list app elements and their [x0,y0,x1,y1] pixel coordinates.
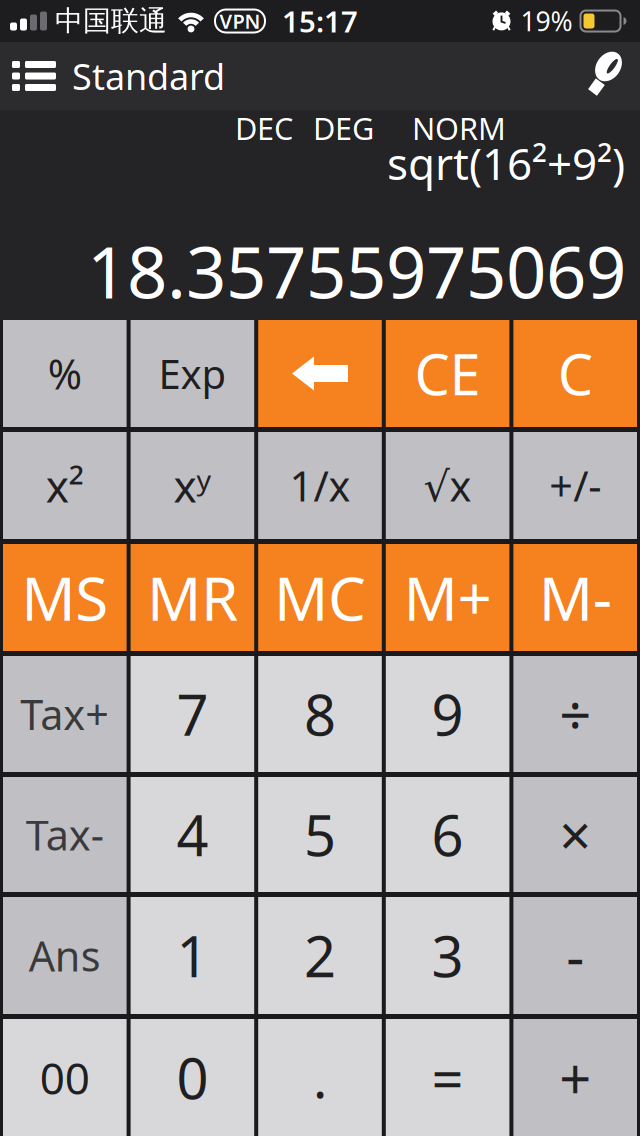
staticText: Tax+ [20,687,109,741]
staticText: 0 [176,1040,208,1115]
button[interactable]: 0 [131,1019,254,1136]
button[interactable]: ÷ [513,656,637,772]
staticText: M+ [404,558,492,637]
button[interactable]: Tax- [3,777,127,892]
staticText: MR [147,558,238,637]
button[interactable]: 8 [258,656,382,772]
button[interactable]: x² [3,432,127,539]
staticText: 2 [304,918,336,993]
staticText: . [313,1042,327,1113]
staticText: 9 [432,677,464,751]
staticText: DEG [313,108,374,148]
staticText: Exp [158,347,226,400]
staticText: +/- [549,458,601,513]
staticText: DEC [235,108,293,148]
staticText: xʸ [173,456,211,515]
button[interactable]: 6 [386,777,509,892]
button[interactable]: C [513,320,637,427]
button[interactable]: Ans [3,897,127,1014]
staticText: CE [415,336,481,411]
button[interactable]: 9 [386,656,509,772]
button[interactable]: MS [3,544,127,651]
button[interactable]: Tax+ [3,656,127,772]
staticText: Standard [72,52,225,100]
staticText: ÷ [559,677,591,751]
staticText: MS [21,558,108,637]
staticText: M- [539,558,612,637]
staticText: × [559,797,591,872]
button[interactable]: 1 [131,897,254,1014]
button[interactable]: M+ [386,544,509,651]
button[interactable]: 2 [258,897,382,1014]
button[interactable]: 3 [386,897,509,1014]
staticText: + [559,1040,591,1115]
staticText: 5 [304,797,336,872]
button[interactable]: 1/x [258,432,382,539]
staticText: C [558,336,593,411]
staticText: Ans [29,928,101,983]
staticText: 4 [176,797,208,872]
button[interactable]: CE [386,320,509,427]
staticText: = [432,1040,464,1115]
staticText: NORM [412,108,506,148]
staticText: % [48,346,82,401]
button[interactable]: √x [386,432,509,539]
staticText: 18.35755975069 [87,224,626,318]
button[interactable]: × [513,777,637,892]
staticText: x² [46,456,84,515]
staticText: 3 [432,918,464,993]
button[interactable]: % [3,320,127,427]
staticText: 7 [176,677,208,751]
staticText: Tax- [26,807,104,862]
button[interactable]: +/- [513,432,637,539]
button[interactable]: xʸ [131,432,254,539]
button[interactable]: = [386,1019,509,1136]
staticText: √x [424,458,472,513]
staticText: VPN [219,8,260,34]
staticText: 15:17 [282,1,358,40]
staticText: 中国联通 [55,4,167,38]
button[interactable]: Exp [131,320,254,427]
button[interactable]: 7 [131,656,254,772]
button[interactable]: 00 [3,1019,127,1136]
staticText: 19% [520,3,572,39]
staticText: 00 [40,1048,90,1107]
staticText: - [566,918,584,993]
button[interactable]: MC [258,544,382,651]
staticText: 6 [432,797,464,872]
button[interactable]: MR [131,544,254,651]
staticText: 1/x [289,458,350,513]
button[interactable]: 4 [131,777,254,892]
staticText: 8 [304,677,336,751]
button[interactable]: . [258,1019,382,1136]
button[interactable]: Menu [0,61,72,91]
button[interactable]: + [513,1019,637,1136]
button[interactable]: M- [513,544,637,651]
button[interactable]: - [513,897,637,1014]
staticText: sqrt(16²+9²) [387,134,625,192]
button[interactable]: Backspace [258,320,382,427]
staticText: 1 [176,918,208,993]
button[interactable]: 5 [258,777,382,892]
button[interactable]: History tape [586,50,640,102]
staticText: MC [274,558,366,637]
